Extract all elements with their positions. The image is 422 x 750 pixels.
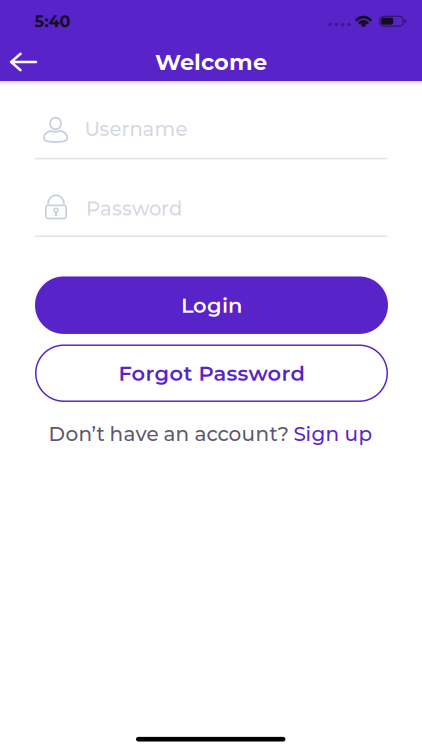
staticText: Welcome (155, 48, 267, 76)
staticText: Don’t have an account? (48, 422, 293, 446)
staticText: Sign up (293, 422, 372, 446)
button[interactable]: Login (35, 276, 388, 334)
staticText: Login (181, 292, 242, 318)
button[interactable]: Forgot Password (35, 344, 388, 402)
staticText: Password (86, 197, 182, 220)
staticText: 5:40 (34, 12, 70, 31)
button[interactable]: Back (1, 40, 45, 84)
button[interactable]: Sign up (293, 422, 372, 446)
staticText: Username (84, 117, 187, 141)
staticText: Forgot Password (118, 360, 304, 386)
